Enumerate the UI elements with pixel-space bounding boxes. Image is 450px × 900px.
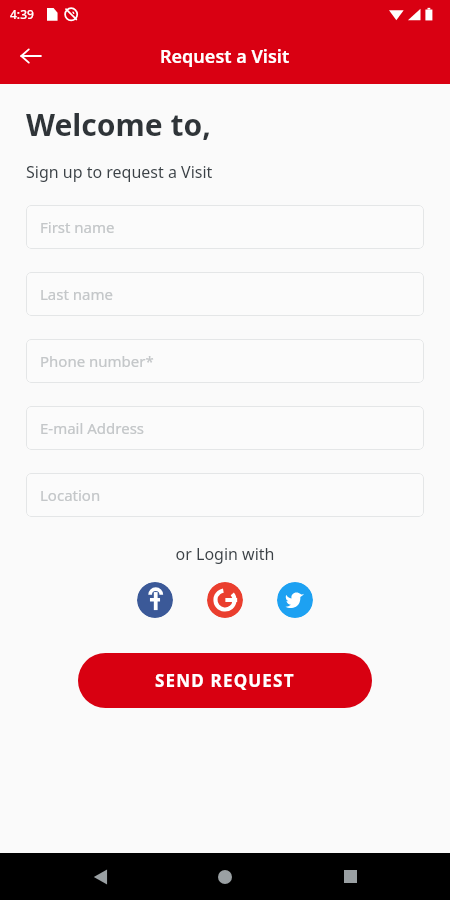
staticText: Last name	[40, 284, 113, 304]
button[interactable]: Phone number*	[26, 339, 424, 383]
button[interactable]: Google	[207, 582, 243, 618]
staticText: SEND REQUEST	[155, 669, 295, 692]
button[interactable]: Facebook	[137, 582, 173, 618]
staticText: Welcome to,	[26, 104, 211, 145]
staticText: or Login with	[0, 543, 450, 565]
button[interactable]: First name	[26, 205, 424, 249]
button[interactable]: Home	[201, 853, 249, 900]
staticText: 4:39	[10, 6, 34, 22]
button[interactable]: E-mail Address	[26, 406, 424, 450]
staticText: E-mail Address	[40, 418, 145, 438]
staticText: Request a Visit	[160, 44, 290, 69]
button[interactable]: Back	[10, 35, 52, 77]
staticText: First name	[40, 217, 115, 237]
staticText: Phone number*	[40, 351, 154, 371]
button[interactable]: Twitter	[277, 582, 313, 618]
button[interactable]: SEND REQUEST	[78, 653, 372, 708]
staticText: Location	[40, 485, 101, 505]
button[interactable]: Last name	[26, 272, 424, 316]
button[interactable]: Recent apps	[326, 853, 374, 900]
button[interactable]: Back	[77, 853, 125, 900]
staticText: Sign up to request a Visit	[26, 161, 213, 183]
button[interactable]: Location	[26, 473, 424, 517]
